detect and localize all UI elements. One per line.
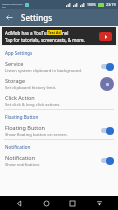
button[interactable]: Service: [0, 58, 118, 75]
staticText: Tap for tutorials, screencasts, & more.: [5, 37, 85, 43]
staticText: Storage: [5, 77, 26, 84]
staticText: App Settings: [5, 50, 33, 56]
staticText: Device Protection: [2, 2, 23, 5]
button[interactable]: Floating Button: [0, 122, 118, 139]
staticText: Show floating button on screen.: [5, 132, 68, 138]
button[interactable]: Hide navigation bar: [92, 196, 106, 210]
staticText: Notification: [5, 144, 31, 150]
button[interactable]: Home: [39, 196, 53, 210]
staticText: Listen system clipboard in background.: [5, 68, 82, 74]
staticText: Test Ad: [48, 30, 61, 35]
button[interactable]: Notification: [0, 152, 118, 169]
staticText: Set clipboard history limit.: [5, 85, 57, 91]
staticText: Settings: [21, 12, 53, 23]
button[interactable]: Toggle: [101, 126, 114, 135]
staticText: nel: [62, 30, 69, 36]
staticText: Show notification.: [5, 162, 41, 168]
staticText: 23:19: [106, 2, 116, 7]
button[interactable]: Recents: [65, 196, 79, 210]
button[interactable]: Toggle: [101, 62, 114, 71]
button[interactable]: Click Action: [0, 92, 118, 109]
button[interactable]: Back: [12, 196, 26, 210]
staticText: Click Action: [5, 94, 35, 101]
staticText: Floating Button: [5, 124, 45, 131]
button[interactable]: Toggle: [101, 156, 114, 165]
button[interactable]: Back: [3, 11, 16, 24]
button[interactable]: Play video ad: [99, 32, 112, 41]
staticText: Floating Button: [5, 114, 39, 120]
button[interactable]: Storage: [0, 75, 118, 92]
staticText: AdMob has a YouTu: [5, 30, 47, 36]
staticText: ON: [2, 5, 6, 8]
staticText: 100%: [87, 2, 96, 7]
staticText: Service: [5, 60, 24, 67]
staticText: Set click & long click actions.: [5, 102, 61, 108]
button[interactable]: AdMob has a YouTu: [2, 27, 116, 45]
staticText: Notification: [5, 154, 36, 161]
